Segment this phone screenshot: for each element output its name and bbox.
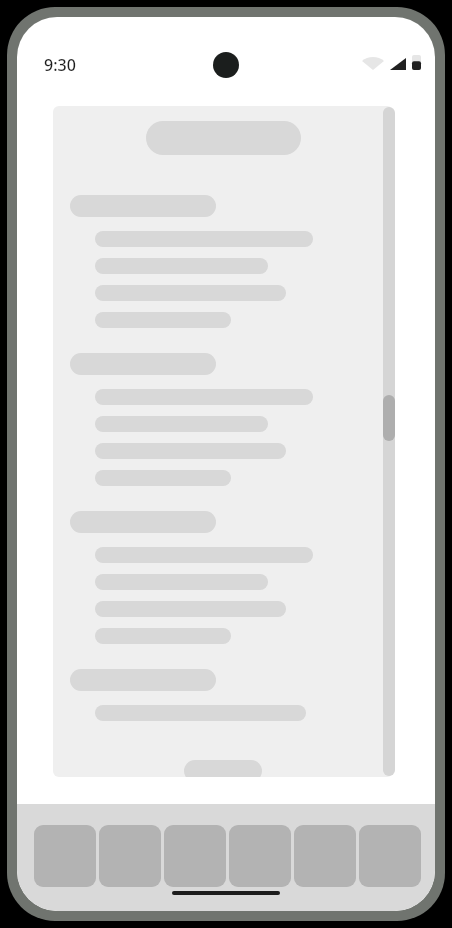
button[interactable]: Key 6 xyxy=(359,825,421,887)
staticText: 9:30 xyxy=(44,54,76,76)
button[interactable]: Scrollbar xyxy=(383,107,395,776)
button[interactable]: Key 3 xyxy=(164,825,226,887)
button[interactable] xyxy=(53,106,393,777)
button[interactable]: Home xyxy=(172,891,280,895)
button[interactable]: Key 2 xyxy=(99,825,161,887)
button[interactable]: Key 5 xyxy=(294,825,356,887)
button[interactable]: Key 4 xyxy=(229,825,291,887)
button[interactable]: Key 1 xyxy=(34,825,96,887)
